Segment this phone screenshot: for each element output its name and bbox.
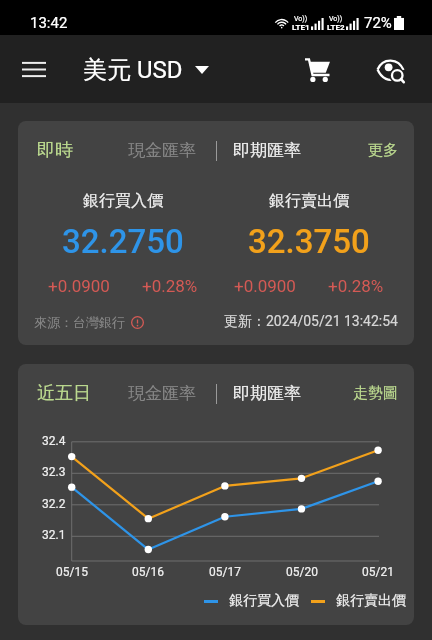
staticText: 05/17 [209, 565, 241, 579]
staticText: 即時 [37, 139, 73, 162]
button[interactable]: Menu [8, 43, 60, 95]
button[interactable]: 即期匯率 [233, 140, 301, 161]
button[interactable]: 即期匯率 [233, 383, 301, 404]
staticText: 05/20 [286, 565, 318, 579]
staticText: +0.28% [142, 276, 198, 296]
button[interactable]: 美元 USD [83, 55, 209, 85]
button[interactable]: 更多 [368, 141, 398, 160]
button[interactable]: 現金匯率 [128, 383, 196, 404]
button[interactable]: Shopping cart [292, 44, 342, 94]
staticText: Vo)) [294, 15, 308, 23]
staticText: 32.2 [42, 497, 66, 511]
staticText: 05/16 [132, 565, 164, 579]
button[interactable]: 現金匯率 [128, 140, 196, 161]
staticText: +0.0900 [234, 276, 296, 296]
staticText: 32.3 [42, 465, 66, 479]
button[interactable]: Watchlist [365, 44, 415, 94]
staticText: 近五日 [37, 382, 91, 405]
staticText: 32.4 [42, 434, 66, 448]
staticText: 銀行買入價 [229, 592, 299, 610]
staticText: 更新：2024/05/21 13:42:54 [224, 313, 398, 331]
staticText: 美元 USD [83, 55, 183, 85]
staticText: 32.3750 [248, 222, 370, 261]
staticText: +0.0900 [48, 276, 110, 296]
staticText: 銀行賣出價 [269, 191, 349, 211]
staticText: 05/21 [362, 565, 394, 579]
staticText: +0.28% [328, 276, 384, 296]
staticText: 來源：台灣銀行 [34, 314, 125, 330]
staticText: 72% [364, 14, 392, 32]
staticText: Vo)) [329, 15, 343, 23]
button[interactable]: 走勢圖 [353, 384, 398, 403]
staticText: 32.1 [42, 528, 66, 542]
staticText: 銀行賣出價 [336, 592, 406, 610]
staticText: LTE1 [292, 23, 310, 32]
staticText: 32.2750 [62, 222, 184, 261]
staticText: 05/15 [56, 565, 88, 579]
staticText: 13:42 [30, 14, 68, 32]
staticText: 銀行買入價 [83, 191, 163, 211]
staticText: LTE2 [327, 23, 345, 32]
